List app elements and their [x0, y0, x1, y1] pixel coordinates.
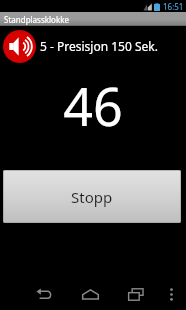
staticText: 46 [63, 70, 123, 132]
staticText: 16:51 [163, 1, 184, 12]
staticText: Stopp [71, 187, 113, 207]
button[interactable]: Stopp [3, 170, 181, 223]
staticText: Standplassklokke [4, 14, 69, 25]
button[interactable]: Recent apps [122, 281, 150, 307]
button[interactable]: More options [161, 281, 181, 307]
staticText: 5 - Presisjon 150 Sek. [40, 38, 158, 54]
button[interactable]: Sound [0, 28, 186, 64]
button[interactable]: Home [76, 281, 104, 307]
button[interactable]: Back [30, 281, 58, 307]
other: Sound [3, 30, 36, 63]
